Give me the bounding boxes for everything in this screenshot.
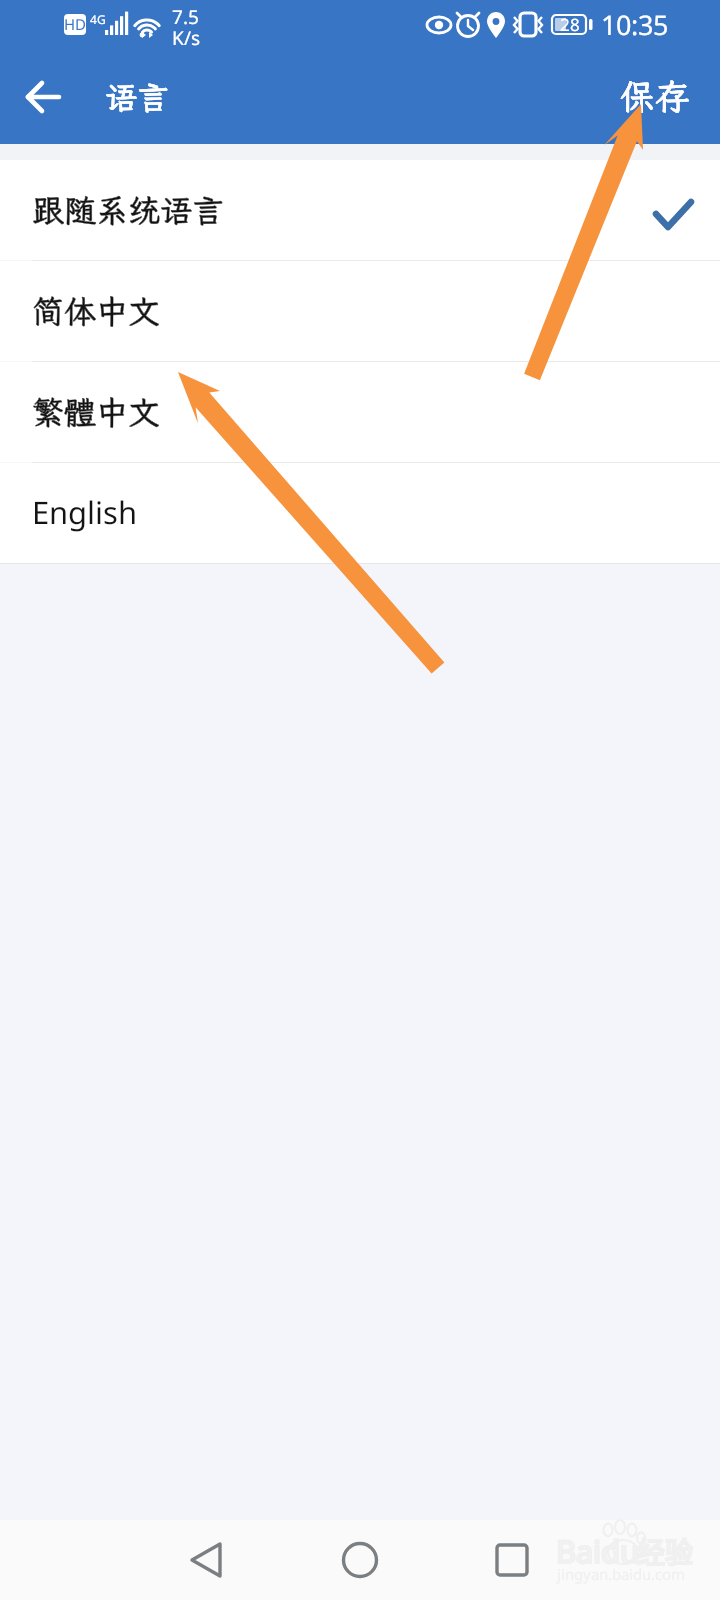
button[interactable] [0,463,720,563]
button[interactable] [600,55,720,144]
button[interactable]: Home [320,1520,400,1600]
button[interactable]: Back [166,1520,246,1600]
button[interactable] [0,261,720,361]
button[interactable]: Back [14,70,74,130]
button[interactable] [0,160,720,260]
button[interactable] [0,362,720,462]
button[interactable]: Recents [471,1520,551,1600]
